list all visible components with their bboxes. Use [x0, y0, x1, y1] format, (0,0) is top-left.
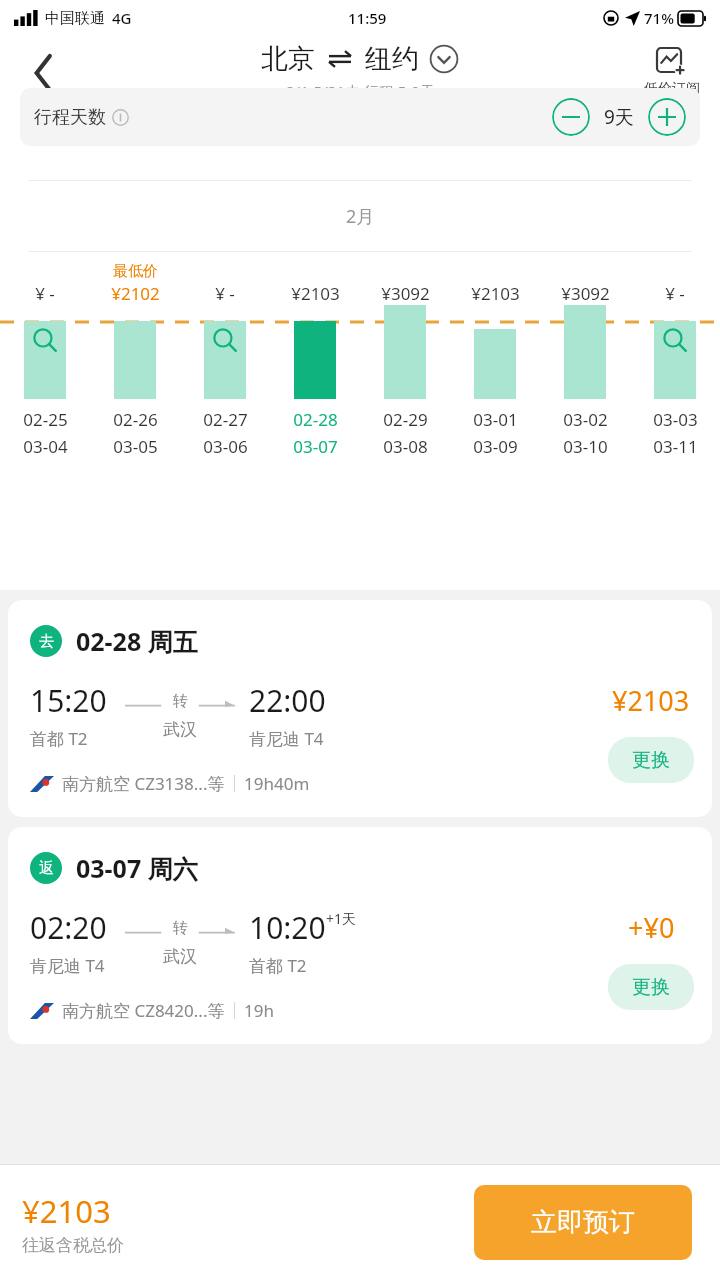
- button[interactable]: 低价订阅: [640, 44, 704, 102]
- staticText: 03-09: [473, 435, 518, 458]
- button[interactable]: ¥2103: [270, 253, 360, 458]
- staticText: 南方航空 CZ3138...等: [62, 772, 225, 795]
- staticText: 首都 T2: [249, 954, 307, 977]
- staticText: 10:20: [249, 907, 326, 948]
- staticText: 2月: [346, 204, 375, 229]
- button[interactable]: ¥3092: [540, 253, 630, 458]
- staticText: 03-03: [653, 408, 698, 431]
- staticText: 更换: [632, 748, 670, 772]
- staticText: ¥2103: [612, 682, 690, 719]
- button[interactable]: ¥ -: [180, 253, 270, 458]
- staticText: 02-28: [293, 408, 338, 431]
- button[interactable]: 立即预订: [474, 1185, 692, 1260]
- staticText: ¥2103: [291, 282, 340, 305]
- staticText: ¥ -: [35, 282, 55, 305]
- staticText: 转: [173, 919, 188, 938]
- staticText: 肯尼迪 T4: [249, 727, 324, 750]
- button[interactable]: 北京: [261, 42, 459, 76]
- staticText: 02-29: [383, 408, 428, 431]
- button[interactable]: 返回: [18, 46, 72, 100]
- button[interactable]: ¥3092: [360, 253, 450, 458]
- staticText: 02-25: [23, 408, 68, 431]
- staticText: 71%: [644, 8, 674, 28]
- staticText: 9天: [604, 104, 634, 130]
- staticText: 纽约: [365, 42, 419, 76]
- staticText: ¥2103: [22, 1190, 111, 1232]
- staticText: 转: [173, 692, 188, 711]
- staticText: ¥2102: [111, 282, 160, 305]
- staticText: 03-07: [293, 435, 338, 458]
- staticText: +¥0: [628, 909, 675, 946]
- staticText: 往返含税总价: [22, 1235, 124, 1256]
- staticText: 02-26: [113, 408, 158, 431]
- staticText: 03-02: [563, 408, 608, 431]
- staticText: 武汉: [163, 719, 197, 740]
- staticText: 行程天数: [34, 106, 106, 129]
- staticText: 03-08: [383, 435, 428, 458]
- staticText: 立即预订: [531, 1206, 635, 1239]
- staticText: 03-10: [563, 435, 608, 458]
- staticText: 返: [39, 859, 54, 878]
- button[interactable]: 行程天数: [20, 88, 700, 146]
- staticText: ¥ -: [665, 282, 685, 305]
- staticText: 19h40m: [244, 772, 310, 795]
- staticText: 03-11: [653, 435, 698, 458]
- button[interactable]: 返: [8, 827, 712, 1044]
- staticText: 北京: [261, 42, 315, 76]
- staticText: 22:00: [249, 680, 326, 721]
- staticText: 02:20: [30, 907, 107, 948]
- staticText: 02-27: [203, 408, 248, 431]
- staticText: 03-01: [473, 408, 518, 431]
- staticText: 03-07 周六: [76, 851, 198, 885]
- button[interactable]: 去: [8, 600, 712, 817]
- button[interactable]: 更换: [608, 964, 694, 1010]
- staticText: ¥3092: [561, 282, 610, 305]
- button[interactable]: ¥2103: [450, 253, 540, 458]
- staticText: ¥2103: [471, 282, 520, 305]
- staticText: 低价订阅: [644, 80, 700, 98]
- staticText: 03-06: [203, 435, 248, 458]
- button[interactable]: 更换: [608, 737, 694, 783]
- staticText: 首都 T2: [30, 727, 88, 750]
- button[interactable]: 最低价: [90, 253, 180, 458]
- staticText: 最低价: [113, 262, 158, 281]
- staticText: 肯尼迪 T4: [30, 954, 105, 977]
- staticText: 去: [39, 632, 54, 651]
- button[interactable]: ¥ -: [630, 253, 720, 458]
- staticText: 03-05: [113, 435, 158, 458]
- staticText: 4G: [112, 8, 132, 28]
- button[interactable]: 增加天数: [648, 98, 686, 136]
- staticText: ¥3092: [381, 282, 430, 305]
- staticText: 更换: [632, 975, 670, 999]
- button[interactable]: 减少天数: [552, 98, 590, 136]
- staticText: 19h: [244, 999, 274, 1022]
- staticText: ¥ -: [215, 282, 235, 305]
- staticText: 11:59: [348, 8, 387, 28]
- staticText: 中国联通: [45, 9, 105, 28]
- staticText: 2/1-5/31去,行程 5-9天: [286, 81, 435, 101]
- staticText: 02-28 周五: [76, 624, 198, 658]
- staticText: 15:20: [30, 680, 107, 721]
- button[interactable]: ¥ -: [0, 253, 90, 458]
- staticText: 03-04: [23, 435, 68, 458]
- staticText: 南方航空 CZ8420...等: [62, 999, 225, 1022]
- staticText: +1天: [326, 909, 357, 928]
- staticText: 武汉: [163, 946, 197, 967]
